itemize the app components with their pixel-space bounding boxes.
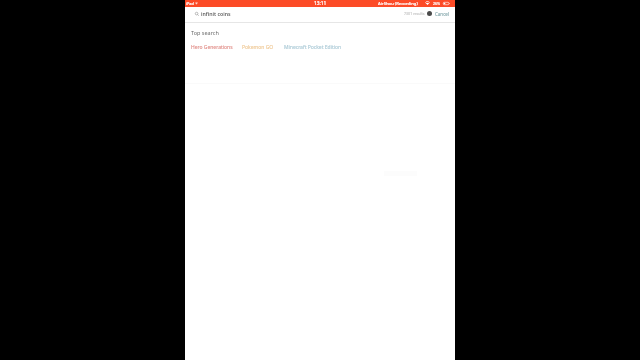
staticText: Hero Generations [191, 44, 233, 51]
button[interactable]: Clear search text [427, 11, 432, 16]
staticText: Pokemon GO [242, 44, 274, 51]
staticText: Top search [191, 29, 219, 36]
staticText: Cancel [435, 11, 450, 17]
staticText: 7301 results [404, 11, 425, 16]
staticText: infinit coins [201, 10, 231, 17]
staticText: 26% [433, 1, 441, 6]
staticText: 13:11 [314, 0, 327, 7]
button[interactable]: Cancel [435, 11, 450, 17]
button[interactable]: Minecraft Pocket Edition [284, 44, 342, 51]
staticText: AirShou (Recording) [378, 1, 418, 7]
button[interactable]: Hero Generations [191, 44, 233, 51]
staticText: Minecraft Pocket Edition [284, 44, 342, 51]
button[interactable]: Pokemon GO [242, 44, 274, 51]
staticText: iPad [186, 1, 194, 6]
